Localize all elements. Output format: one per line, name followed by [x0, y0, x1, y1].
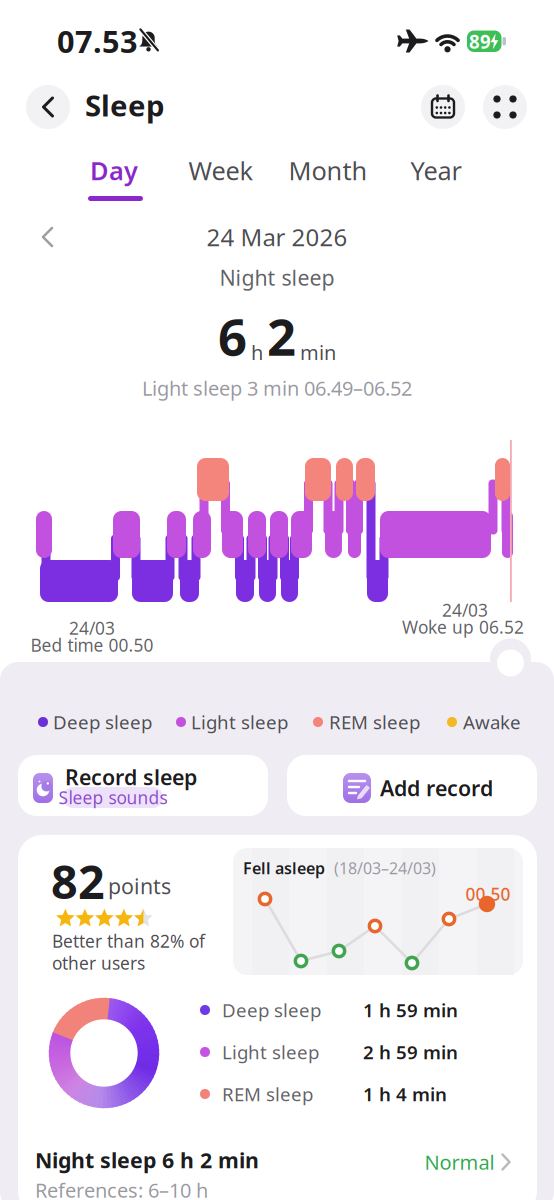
- staticText: 07.53: [57, 21, 138, 61]
- button[interactable]: Day: [90, 154, 138, 187]
- staticText: REM sleep: [329, 710, 420, 734]
- staticText: Add record: [380, 774, 493, 802]
- staticText: 24/03: [69, 616, 115, 639]
- button[interactable]: [26, 85, 70, 129]
- staticText: 82: [51, 850, 105, 912]
- staticText: Awake: [463, 710, 521, 734]
- staticText: 00.50: [465, 882, 510, 905]
- staticText: Month: [288, 154, 367, 187]
- staticText: Week: [188, 154, 253, 187]
- staticText: Sleep: [85, 85, 165, 124]
- staticText: 1 h 4 min: [363, 1082, 447, 1106]
- staticText: References: 6–10 h: [35, 1177, 208, 1200]
- staticText: Better than 82% of: [52, 929, 205, 952]
- staticText: Light sleep: [191, 710, 288, 734]
- button[interactable]: [483, 85, 527, 129]
- staticText: Sleep sounds: [58, 786, 167, 809]
- staticText: Year: [410, 154, 461, 187]
- staticText: REM sleep: [222, 1082, 313, 1106]
- staticText: 24/03: [442, 598, 488, 621]
- staticText: Day: [90, 154, 138, 187]
- staticText: 2: [267, 302, 296, 370]
- button[interactable]: Add record: [287, 755, 537, 816]
- staticText: Bed time 00.50: [30, 633, 153, 656]
- staticText: (18/03–24/03): [334, 857, 436, 879]
- staticText: Woke up 06.52: [402, 615, 524, 638]
- button[interactable]: Week: [188, 154, 253, 187]
- staticText: Normal: [424, 1149, 494, 1175]
- staticText: 6: [218, 302, 247, 370]
- staticText: 2 h 59 min: [363, 1040, 458, 1064]
- button[interactable]: Month: [288, 154, 367, 187]
- staticText: Night sleep 6 h 2 min: [35, 1146, 259, 1174]
- button[interactable]: [34, 222, 64, 252]
- staticText: 89: [469, 29, 491, 54]
- button[interactable]: Normal: [424, 1149, 511, 1175]
- staticText: Light sleep 3 min 06.49–06.52: [142, 375, 412, 401]
- staticText: min: [300, 339, 336, 366]
- staticText: Deep sleep: [53, 710, 152, 734]
- staticText: Deep sleep: [222, 998, 321, 1022]
- staticText: 24 Mar 2026: [206, 221, 347, 253]
- staticText: other users: [52, 951, 145, 974]
- staticText: Fell asleep: [243, 857, 325, 879]
- staticText: 1 h 59 min: [363, 998, 458, 1022]
- staticText: h: [251, 339, 263, 366]
- staticText: Night sleep: [219, 263, 334, 292]
- button[interactable]: Year: [410, 154, 461, 187]
- button[interactable]: Record sleep: [18, 755, 268, 816]
- staticText: Light sleep: [222, 1040, 319, 1064]
- button[interactable]: [421, 85, 465, 129]
- staticText: Record sleep: [65, 763, 197, 791]
- staticText: points: [108, 872, 171, 900]
